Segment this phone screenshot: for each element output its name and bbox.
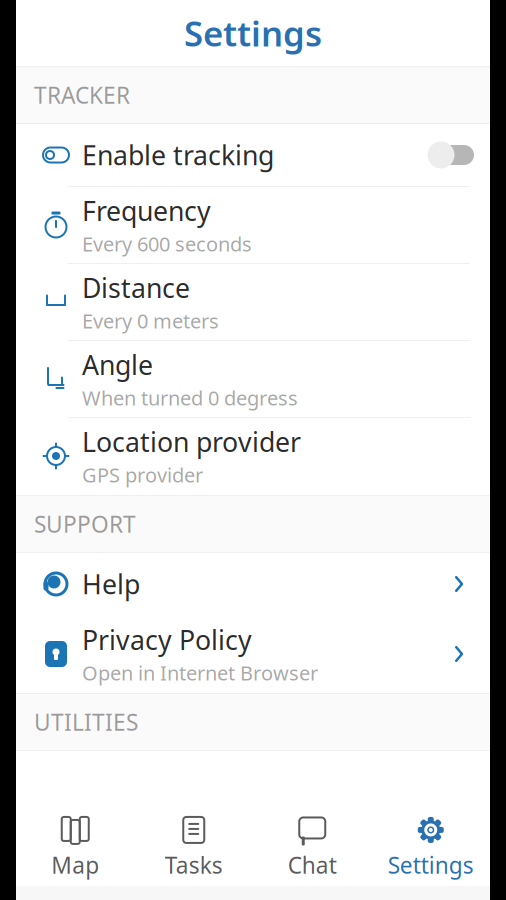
button[interactable]: Settings: [371, 806, 490, 890]
button[interactable]: Location provider: [16, 418, 490, 495]
staticText: Settings: [184, 10, 322, 56]
button[interactable]: Frequency: [16, 187, 490, 264]
staticText: Angle: [82, 347, 153, 382]
staticText: Settings: [388, 850, 474, 880]
staticText: Privacy Policy: [82, 622, 252, 657]
button[interactable]: Enable tracking: [16, 124, 490, 187]
staticText: Chat: [288, 850, 337, 880]
button[interactable]: Map: [16, 806, 134, 890]
staticText: Distance: [82, 270, 190, 305]
staticText: GPS provider: [82, 461, 203, 488]
button[interactable]: Tasks: [134, 806, 253, 890]
button[interactable]: Chat: [253, 806, 371, 890]
staticText: SUPPORT: [34, 509, 136, 539]
staticText: Open in Internet Browser: [82, 659, 318, 686]
staticText: UTILITIES: [34, 707, 138, 737]
staticText: TRACKER: [34, 80, 130, 110]
button[interactable]: Angle: [16, 341, 490, 418]
button[interactable]: Help: [16, 553, 490, 616]
button[interactable]: Privacy Policy: [16, 616, 490, 693]
staticText: Every 0 meters: [82, 307, 219, 334]
staticText: Tasks: [165, 850, 223, 880]
staticText: Every 600 seconds: [82, 230, 252, 257]
staticText: Frequency: [82, 193, 211, 228]
button[interactable]: Distance: [16, 264, 490, 341]
staticText: When turned 0 degress: [82, 384, 298, 411]
staticText: Location provider: [82, 424, 301, 459]
staticText: Enable tracking: [82, 137, 274, 173]
staticText: Help: [82, 566, 140, 602]
staticText: Map: [51, 850, 99, 880]
